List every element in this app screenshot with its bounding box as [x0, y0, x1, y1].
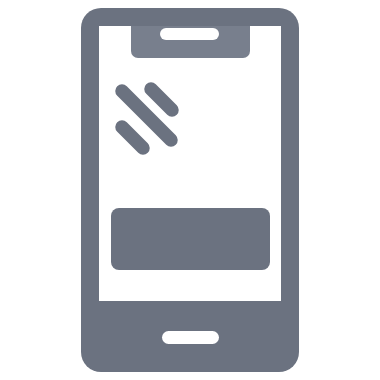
button[interactable]: Smartphone with screen content — [0, 0, 380, 380]
